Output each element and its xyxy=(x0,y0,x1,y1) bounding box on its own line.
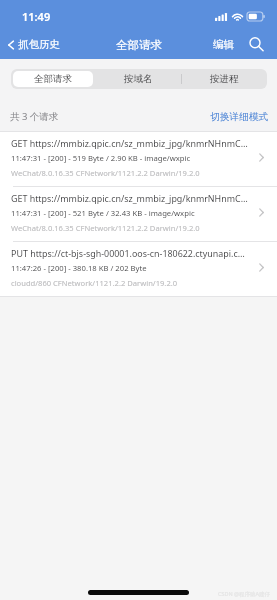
button[interactable]: 抓包历史 xyxy=(0,34,66,55)
button[interactable]: 按进程 xyxy=(184,71,265,87)
staticText: GET https://mmbiz.qpic.cn/sz_mmbiz_jpg/k… xyxy=(11,137,248,149)
staticText: 11:47:26 - [200] - 380.18 KB / 202 Byte xyxy=(11,263,147,273)
staticText: CSDN @程序猿A建仔 xyxy=(218,590,271,598)
staticText: PUT https://ct-bjs-sgh-00001.oos-cn-1806… xyxy=(11,247,245,259)
button[interactable]: 编辑 xyxy=(212,34,235,55)
button[interactable]: GET https://mmbiz.qpic.cn/sz_mmbiz_jpg/k… xyxy=(0,132,277,186)
staticText: 11:47:31 - [200] - 519 Byte / 2.90 KB - … xyxy=(11,153,191,163)
staticText: GET https://mmbiz.qpic.cn/sz_mmbiz_jpg/k… xyxy=(11,192,248,204)
staticText: 按进程 xyxy=(210,73,239,85)
staticText: 全部请求 xyxy=(116,38,162,52)
staticText: 全部请求 xyxy=(34,73,72,85)
staticText: WeChat/8.0.16.35 CFNetwork/1121.2.2 Darw… xyxy=(11,223,200,233)
button[interactable]: PUT https://ct-bjs-sgh-00001.oos-cn-1806… xyxy=(0,242,277,296)
staticText: 抓包历史 xyxy=(18,38,60,51)
staticText: 11:49 xyxy=(22,9,51,24)
staticText: 共 3 个请求 xyxy=(10,110,59,123)
button[interactable]: GET https://mmbiz.qpic.cn/sz_mmbiz_jpg/k… xyxy=(0,187,277,241)
button[interactable]: 切换详细模式 xyxy=(204,105,277,129)
button[interactable]: 全部请求 xyxy=(13,71,93,87)
staticText: 按域名 xyxy=(124,73,153,85)
staticText: 11:47:31 - [200] - 521 Byte / 32.43 KB -… xyxy=(11,208,195,218)
staticText: cloudd/860 CFNetwork/1121.2.2 Darwin/19.… xyxy=(11,278,178,288)
button[interactable]: Search xyxy=(247,35,265,53)
button[interactable]: 按域名 xyxy=(98,71,179,87)
staticText: WeChat/8.0.16.35 CFNetwork/1121.2.2 Darw… xyxy=(11,168,200,178)
